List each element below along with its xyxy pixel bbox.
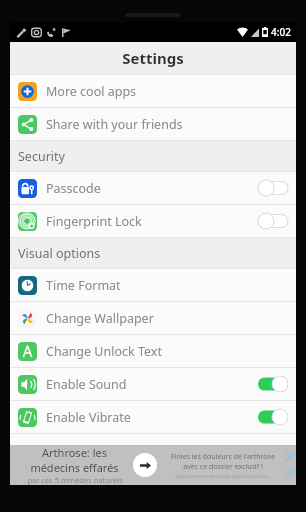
staticText: solutions.sante-corps-esprit.com/ar...	[175, 472, 271, 479]
button[interactable]: Enable Vibrate	[10, 401, 296, 433]
button[interactable]: On	[258, 409, 288, 425]
button[interactable]: Ad information	[286, 469, 294, 477]
staticText: Passcode	[46, 180, 258, 197]
button[interactable]: On	[258, 376, 288, 392]
staticText: Enable Sound	[46, 376, 258, 393]
staticText: Fingerprint Lock	[46, 213, 258, 230]
staticText: Settings	[122, 48, 184, 68]
staticText: Visual options	[18, 245, 101, 262]
button[interactable]: Share with your friends	[10, 108, 296, 140]
staticText: Share with your friends	[46, 116, 288, 133]
staticText: Change Wallpaper	[46, 310, 288, 327]
button[interactable]: Fingerprint Lock	[10, 205, 296, 237]
staticText: Time Format	[46, 277, 288, 294]
staticText: More cool apps	[46, 83, 288, 100]
button[interactable]: Enable Sound	[10, 368, 296, 400]
staticText: Arthrose: les médecins effarés	[16, 445, 133, 475]
button[interactable]: Change Wallpaper	[10, 302, 296, 334]
staticText: par ces 5 remèdes naturels	[27, 475, 123, 485]
staticText: avec ce dossier exclusif !	[183, 462, 263, 472]
staticText: Finies les douleurs de l'arthrose	[171, 452, 275, 462]
staticText: Change Unlock Text	[46, 343, 288, 360]
button[interactable]: Change Unlock Text	[10, 335, 296, 367]
staticText: Enable Vibrate	[46, 409, 258, 426]
button[interactable]: More cool apps	[10, 75, 296, 107]
staticText: 4:02	[271, 25, 291, 39]
button[interactable]: Passcode	[10, 172, 296, 204]
button[interactable]: Off	[258, 180, 288, 196]
staticText: Security	[18, 148, 65, 165]
button[interactable]: Time Format	[10, 269, 296, 301]
button[interactable]: Open ad	[133, 453, 157, 477]
button[interactable]: Off	[258, 213, 288, 229]
button[interactable]: Close ad	[286, 453, 294, 461]
